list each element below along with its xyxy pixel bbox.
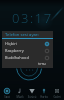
button[interactable]: Sürücü bbox=[27, 84, 37, 99]
button[interactable]: İPTAL bbox=[37, 61, 48, 66]
staticText: Telefon sesi ayarı bbox=[5, 32, 39, 38]
staticText: Saat bbox=[2, 95, 12, 99]
button[interactable]: Saat bbox=[2, 84, 12, 99]
button[interactable]: Raspberry bbox=[2, 47, 53, 54]
staticText: Müzik bbox=[15, 95, 25, 99]
button[interactable]: Buddhahood bbox=[2, 54, 53, 61]
staticText: Hiçbiri bbox=[5, 41, 45, 46]
staticText: Sürücü bbox=[27, 95, 37, 99]
staticText: Harita bbox=[39, 95, 49, 99]
button[interactable]: Harita bbox=[39, 84, 49, 99]
staticText: 03:17 bbox=[12, 9, 53, 27]
button[interactable]: Galeri bbox=[52, 84, 62, 99]
staticText: Buddhahood bbox=[5, 55, 45, 60]
button[interactable]: Müzik bbox=[15, 84, 25, 99]
staticText: İPTAL bbox=[38, 62, 47, 65]
staticText: Galeri bbox=[52, 95, 62, 99]
button[interactable]: Hiçbiri bbox=[2, 40, 53, 47]
staticText: Raspberry bbox=[5, 48, 45, 53]
